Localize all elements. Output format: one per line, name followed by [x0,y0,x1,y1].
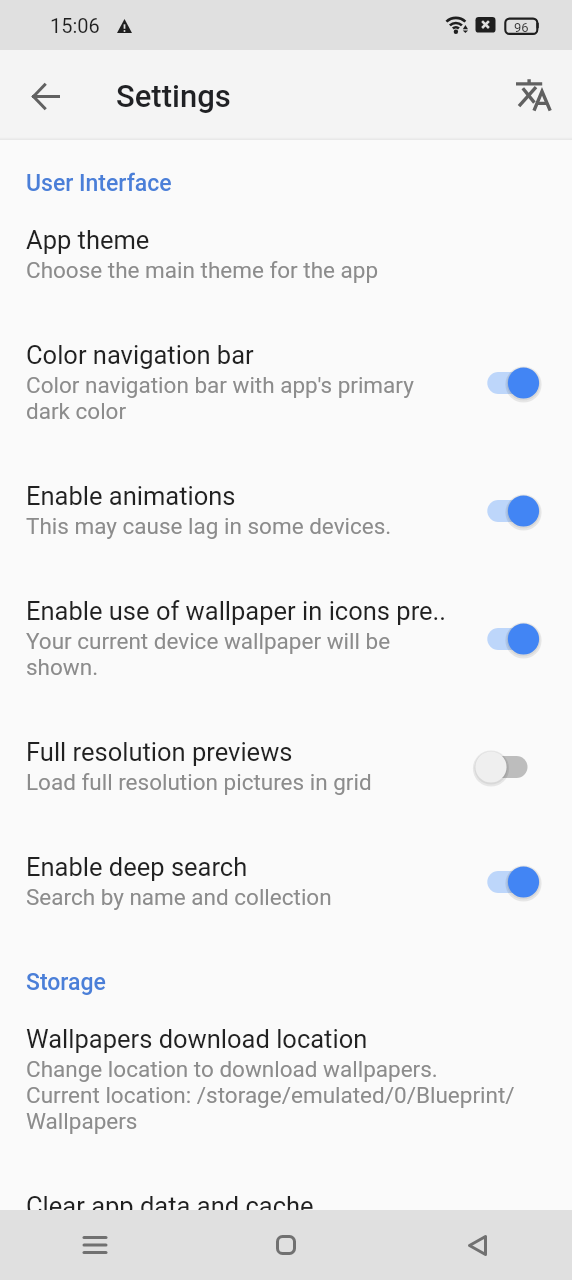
staticText: User Interface [26,170,172,197]
button[interactable]: Toggle on [470,860,572,904]
staticText: Enable deep search [26,852,476,882]
staticText: Settings [116,78,231,114]
staticText: App theme [26,225,476,255]
button[interactable]: Toggle on [470,489,572,533]
button[interactable]: Clear app data and cache [0,1163,572,1210]
button[interactable]: Full resolution previews [0,709,572,824]
button[interactable]: Enable use of wallpaper in icons pre.. [0,568,572,709]
staticText: 15:06 [50,14,100,37]
button[interactable]: Home [256,1215,316,1275]
staticText: Color navigation bar with app's primary … [26,372,446,424]
button[interactable]: Toggle off [470,745,572,789]
staticText: Choose the main theme for the app [26,257,446,283]
button[interactable]: Change language [511,73,557,119]
button[interactable]: Toggle on [470,361,572,405]
button[interactable]: Toggle on [470,617,572,661]
button[interactable]: Enable deep search [0,824,572,939]
staticText: 96 [514,20,529,35]
button[interactable]: Enable animations [0,453,572,568]
staticText: Search by name and collection [26,884,446,910]
button[interactable]: Back [447,1215,507,1275]
staticText: Enable animations [26,481,476,511]
staticText: Change location to download wallpapers. … [26,1056,546,1134]
staticText: Your current device wallpaper will be sh… [26,628,446,680]
button[interactable]: Color navigation bar [0,312,572,453]
staticText: Storage [26,969,106,996]
staticText: Color navigation bar [26,340,476,370]
staticText: Enable use of wallpaper in icons pre.. [26,596,476,626]
button[interactable]: Navigate up [21,72,69,120]
staticText: Clear app data and cache [26,1191,546,1210]
button[interactable]: Wallpapers download location [0,996,572,1163]
button[interactable]: App theme [0,197,572,312]
staticText: This may cause lag in some devices. [26,513,446,539]
staticText: Full resolution previews [26,737,476,767]
staticText: Wallpapers download location [26,1024,546,1054]
button[interactable]: Recent apps [65,1215,125,1275]
staticText: Load full resolution pictures in grid [26,769,446,795]
